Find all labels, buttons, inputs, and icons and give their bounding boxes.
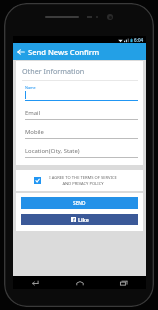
- staticText: Location(City, State): [25, 147, 80, 155]
- button[interactable]: Back: [13, 276, 58, 289]
- staticText: f: [73, 217, 75, 222]
- button[interactable]: Recent apps: [102, 276, 146, 289]
- staticText: Other Information: [22, 66, 85, 76]
- button[interactable]: Mobile: [22, 128, 138, 139]
- button[interactable]: Navigate up: [13, 43, 28, 60]
- staticText: I AGREE TO THE TERMS OF SERVICE AND PRIV…: [49, 175, 117, 186]
- button[interactable]: Home: [58, 276, 102, 289]
- staticText: Mobile: [25, 128, 44, 136]
- staticText: 6:04: [134, 37, 144, 43]
- button[interactable]: f: [21, 214, 138, 225]
- button[interactable]: Name: [22, 85, 138, 101]
- button[interactable]: SEND: [21, 197, 138, 209]
- staticText: Email: [25, 109, 41, 117]
- button[interactable]: I AGREE TO THE TERMS OF SERVICE AND PRIV…: [16, 170, 143, 191]
- staticText: SEND: [73, 200, 86, 207]
- staticText: Like: [78, 216, 89, 223]
- staticText: Send News Confirm: [28, 47, 100, 57]
- button[interactable]: Location(City, State): [22, 147, 138, 158]
- button[interactable]: Email: [22, 109, 138, 120]
- staticText: Name: [25, 85, 36, 90]
